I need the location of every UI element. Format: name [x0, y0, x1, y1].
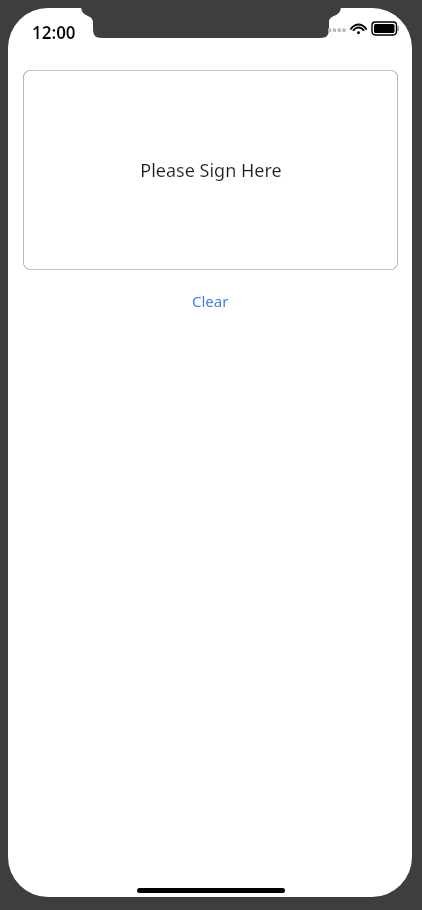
- staticText: Please Sign Here: [140, 158, 282, 183]
- button[interactable]: Clear: [182, 288, 239, 314]
- button[interactable]: Please Sign Here: [23, 70, 398, 270]
- staticText: Clear: [192, 291, 229, 311]
- staticText: 12:00: [32, 21, 76, 44]
